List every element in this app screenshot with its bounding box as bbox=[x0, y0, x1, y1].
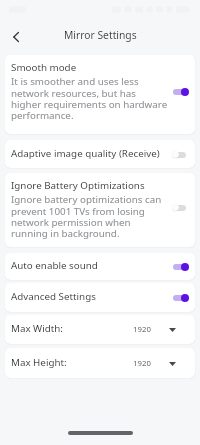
button[interactable]: Advanced Settings bbox=[5, 283, 195, 312]
button[interactable]: Auto enable sound bbox=[5, 253, 195, 280]
staticText: Advanced Settings bbox=[11, 290, 172, 303]
button[interactable]: Toggle off bbox=[172, 149, 189, 160]
staticText: Adaptive image quality (Receive) bbox=[11, 147, 172, 160]
button[interactable]: Max Height: bbox=[5, 348, 195, 378]
staticText: Smooth mode bbox=[11, 61, 77, 74]
staticText: Ignore battery optimizations can prevent… bbox=[11, 193, 168, 240]
button[interactable]: Adaptive image quality (Receive) bbox=[5, 140, 195, 168]
button[interactable]: Toggle off bbox=[172, 202, 189, 213]
button[interactable]: Smooth mode bbox=[5, 55, 195, 134]
button[interactable]: Toggle on bbox=[172, 261, 189, 272]
staticText: 1920 bbox=[133, 324, 151, 335]
button[interactable]: Toggle on bbox=[172, 292, 189, 303]
button[interactable]: Max Width: bbox=[5, 315, 195, 344]
button[interactable]: Toggle on bbox=[172, 86, 189, 97]
staticText: It is smoother and uses less network res… bbox=[11, 75, 168, 122]
staticText: Max Height: bbox=[11, 356, 133, 369]
button[interactable]: Back bbox=[6, 27, 26, 47]
staticText: Mirror Settings bbox=[64, 28, 137, 42]
staticText: Auto enable sound bbox=[11, 259, 172, 272]
staticText: Ignore Battery Optimizations bbox=[11, 179, 145, 192]
staticText: Max Width: bbox=[11, 322, 133, 335]
button[interactable]: Ignore Battery Optimizations bbox=[5, 173, 195, 247]
button[interactable]: 1920 bbox=[133, 324, 189, 335]
staticText: 1920 bbox=[133, 358, 151, 369]
button[interactable]: 1920 bbox=[133, 358, 189, 369]
